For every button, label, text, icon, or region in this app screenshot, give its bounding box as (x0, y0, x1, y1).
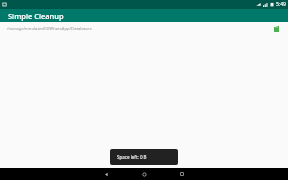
button[interactable]: /storage/emulated/0/WhatsApp/Databases (0, 22, 288, 36)
button[interactable]: Storage (271, 24, 281, 34)
staticText: 5:49 (276, 1, 286, 8)
staticText: Simple Cleanup (8, 11, 64, 21)
button[interactable]: Back (100, 168, 112, 180)
button[interactable]: Space left: 0 B (110, 149, 178, 165)
button[interactable]: Recent apps (176, 168, 188, 180)
staticText: /storage/emulated/0/WhatsApp/Databases (7, 26, 271, 32)
button[interactable]: Home (138, 168, 150, 180)
staticText: Space left: 0 B (117, 154, 147, 160)
